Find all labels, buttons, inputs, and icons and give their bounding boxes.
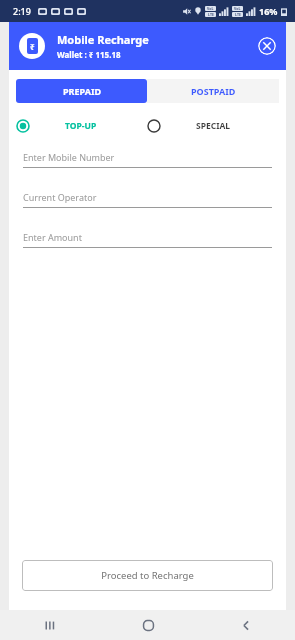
staticText: Proceed to Recharge (101, 569, 194, 582)
staticText: POSTPAID (191, 85, 236, 97)
button[interactable]: TOP-UP (16, 115, 147, 137)
staticText: TOP-UP (65, 120, 97, 132)
staticText: Wallet : ₹ 115.18 (57, 49, 121, 60)
button[interactable]: Enter Mobile Number (23, 151, 272, 168)
staticText: SPECIAL (196, 120, 231, 132)
button[interactable]: Current Operator (23, 191, 272, 208)
button[interactable]: POSTPAID (147, 79, 279, 103)
button[interactable]: Enter Amount (23, 231, 272, 248)
staticText: Mobile Recharge (57, 32, 149, 47)
staticText: 2:19 (13, 5, 31, 17)
button[interactable]: Proceed to Recharge (22, 560, 273, 591)
button[interactable]: Home (99, 610, 197, 640)
staticText: ₹ (30, 41, 35, 52)
button[interactable]: Back (197, 610, 295, 640)
staticText: Enter Mobile Number (23, 151, 115, 163)
staticText: 16% (259, 5, 278, 17)
staticText: LTE (208, 12, 214, 17)
button[interactable]: SPECIAL (147, 115, 279, 137)
staticText: Current Operator (23, 191, 97, 203)
staticText: LTE (235, 12, 241, 17)
staticText: PREPAID (63, 85, 101, 97)
button[interactable]: Recents (0, 610, 99, 640)
button[interactable]: Close (258, 37, 276, 55)
staticText: Enter Amount (23, 231, 82, 243)
button[interactable]: PREPAID (16, 79, 147, 103)
staticText: VoL (207, 6, 214, 11)
staticText: VoL (234, 6, 241, 11)
